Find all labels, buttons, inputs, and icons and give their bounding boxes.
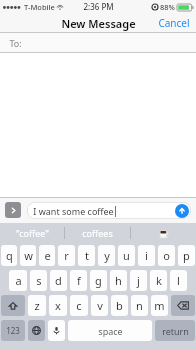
staticText: 2:36 PM (83, 1, 114, 12)
staticText: h (115, 273, 122, 288)
button[interactable]: Show apps (5, 202, 21, 218)
staticText: i (145, 248, 148, 263)
button[interactable]: h (110, 270, 127, 291)
button[interactable]: c (70, 295, 88, 316)
staticText: coffees (82, 227, 113, 239)
button[interactable]: d (50, 270, 67, 291)
staticText: Cancel (158, 16, 190, 30)
button[interactable]: s (30, 270, 47, 291)
staticText: a (15, 273, 22, 288)
button[interactable]: Shift (1, 295, 25, 316)
staticText: o (163, 248, 170, 263)
button[interactable]: coffees (65, 223, 130, 243)
staticText: To: (9, 37, 22, 49)
staticText: return (162, 325, 189, 337)
staticText: T-Mobile (24, 2, 55, 12)
staticText: t (85, 248, 89, 263)
button[interactable]: o (158, 245, 175, 266)
button[interactable]: i (138, 245, 155, 266)
button[interactable]: l (170, 270, 187, 291)
button[interactable]: g (90, 270, 107, 291)
staticText: m (154, 298, 165, 313)
button[interactable]: f (70, 270, 87, 291)
button[interactable]: z (28, 295, 46, 316)
staticText: b (116, 298, 123, 313)
button[interactable]: m (151, 295, 168, 316)
staticText: u (123, 248, 130, 263)
button[interactable]: Backspace (171, 295, 195, 316)
staticText: space (98, 325, 123, 337)
staticText: n (136, 298, 143, 313)
staticText: y (104, 248, 110, 263)
staticText: k (156, 273, 162, 288)
button[interactable]: n (131, 295, 148, 316)
button[interactable]: space (68, 320, 152, 341)
button[interactable]: "coffee" (0, 223, 64, 243)
button[interactable]: p (178, 245, 195, 266)
button[interactable]: Dictate (48, 320, 65, 341)
button[interactable]: return (155, 320, 195, 341)
staticText: z (34, 298, 40, 313)
staticText: f (77, 273, 81, 288)
button[interactable]: u (118, 245, 135, 266)
button[interactable]: I want some coffee (27, 202, 191, 219)
staticText: q (6, 248, 13, 263)
button[interactable]: e (39, 245, 55, 266)
staticText: New Message (61, 16, 136, 31)
button[interactable]: v (91, 295, 108, 316)
button[interactable]: y (98, 245, 115, 266)
staticText: c (76, 298, 82, 313)
staticText: 123 (6, 325, 20, 336)
staticText: s (36, 273, 42, 288)
button[interactable]: 123 (1, 320, 25, 341)
staticText: "coffee" (16, 227, 49, 239)
staticText: d (55, 273, 62, 288)
staticText: g (95, 273, 102, 288)
staticText: w (24, 248, 33, 263)
button[interactable]: q (1, 245, 17, 266)
button[interactable]: k (150, 270, 167, 291)
button[interactable]: r (58, 245, 75, 266)
staticText: r (64, 248, 69, 263)
button[interactable]: Cancel (152, 13, 196, 33)
staticText: 88% (160, 2, 175, 12)
button[interactable]: To: (0, 33, 196, 53)
staticText: e (44, 248, 51, 263)
button[interactable]: Send (175, 204, 189, 218)
staticText: l (177, 273, 180, 288)
button[interactable]: Change keyboard (28, 320, 45, 341)
staticText: I want some coffee (33, 205, 114, 217)
button[interactable]: t (78, 245, 95, 266)
staticText: v (97, 298, 103, 313)
button[interactable]: a (9, 270, 27, 291)
staticText: j (137, 273, 140, 288)
staticText: p (183, 248, 190, 263)
button[interactable]: x (49, 295, 67, 316)
staticText: x (55, 298, 61, 313)
button[interactable]: b (111, 295, 128, 316)
button[interactable]: w (20, 245, 36, 266)
button[interactable]: Coffee emoji (131, 223, 196, 243)
button[interactable]: j (130, 270, 147, 291)
